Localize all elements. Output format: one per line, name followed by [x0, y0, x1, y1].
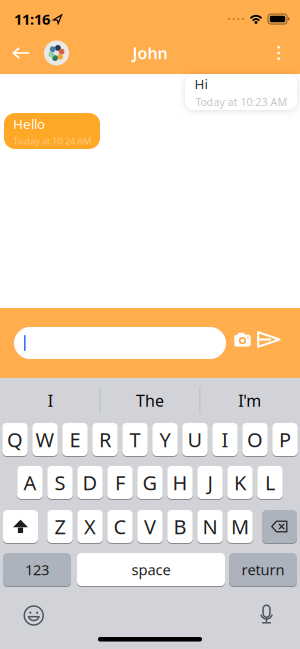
button[interactable]: U — [182, 423, 208, 456]
button[interactable]: A — [17, 466, 43, 499]
button[interactable]: D — [77, 466, 103, 499]
button[interactable]: W — [32, 423, 58, 456]
staticText: U — [187, 426, 202, 453]
button[interactable]: More options — [277, 38, 300, 68]
staticText: M — [231, 513, 249, 540]
button[interactable]: F — [107, 466, 133, 499]
button[interactable]: P — [272, 423, 298, 456]
button[interactable]: Emoji — [24, 606, 43, 625]
button[interactable]: Send — [257, 334, 281, 351]
button[interactable]: H — [167, 466, 193, 499]
button[interactable]: J — [197, 466, 223, 499]
button[interactable]: Contact photo — [30, 40, 69, 65]
button[interactable]: 123 — [3, 553, 71, 586]
button[interactable]: B — [167, 510, 193, 543]
button[interactable]: X — [77, 510, 103, 543]
staticText: H — [172, 469, 187, 496]
button[interactable]: M — [227, 510, 253, 543]
staticText: The — [136, 390, 164, 411]
button[interactable]: N — [197, 510, 223, 543]
staticText: W — [35, 426, 54, 453]
button[interactable]: Delete — [262, 510, 297, 543]
button[interactable]: I — [1, 378, 100, 423]
staticText: F — [115, 469, 125, 496]
button[interactable]: O — [242, 423, 268, 456]
staticText: space — [131, 560, 170, 579]
staticText: E — [69, 426, 80, 453]
button[interactable]: E — [62, 423, 88, 456]
staticText: Y — [159, 426, 170, 453]
staticText: Z — [54, 513, 65, 540]
staticText: I'm — [238, 390, 261, 411]
staticText: 123 — [25, 560, 49, 579]
staticText: John — [132, 42, 167, 64]
button[interactable]: G — [137, 466, 163, 499]
staticText: V — [144, 513, 156, 540]
staticText: I — [48, 390, 53, 411]
button[interactable]: L — [257, 466, 283, 499]
button[interactable]: Y — [152, 423, 178, 456]
staticText: Today at 10:23 AM — [195, 95, 287, 109]
button[interactable]: Message text field — [14, 327, 226, 359]
button[interactable]: space — [77, 553, 225, 586]
staticText: C — [113, 513, 126, 540]
staticText: 11:16 — [14, 9, 50, 29]
staticText: P — [279, 426, 291, 453]
button[interactable]: Z — [47, 510, 73, 543]
staticText: X — [84, 513, 96, 540]
staticText: J — [207, 469, 212, 496]
staticText: R — [99, 426, 111, 453]
button[interactable]: S — [47, 466, 73, 499]
staticText: D — [82, 469, 97, 496]
button[interactable]: K — [227, 466, 253, 499]
staticText: N — [202, 513, 217, 540]
staticText: A — [23, 469, 36, 496]
staticText: Hi — [194, 75, 207, 93]
staticText: return — [241, 560, 284, 579]
button[interactable]: I — [212, 423, 238, 456]
staticText: Hello — [13, 115, 45, 133]
button[interactable]: return — [229, 553, 297, 586]
button[interactable]: Q — [2, 423, 28, 456]
staticText: Today at 10:24 AM — [13, 135, 91, 147]
staticText: G — [142, 469, 157, 496]
button[interactable]: Dictation — [260, 605, 273, 626]
staticText: T — [129, 426, 140, 453]
button[interactable]: V — [137, 510, 163, 543]
button[interactable]: Camera — [234, 335, 251, 350]
button[interactable]: The — [100, 378, 199, 423]
button[interactable]: T — [122, 423, 148, 456]
staticText: B — [173, 513, 186, 540]
staticText: K — [234, 469, 246, 496]
staticText: S — [54, 469, 65, 496]
button[interactable]: R — [92, 423, 118, 456]
button[interactable]: C — [107, 510, 133, 543]
staticText: I — [221, 426, 228, 453]
button[interactable]: Back — [0, 34, 30, 72]
staticText: Q — [7, 426, 23, 453]
staticText: L — [265, 469, 275, 496]
button[interactable]: I'm — [200, 378, 299, 423]
button[interactable]: Shift — [3, 510, 38, 543]
staticText: O — [247, 426, 263, 453]
